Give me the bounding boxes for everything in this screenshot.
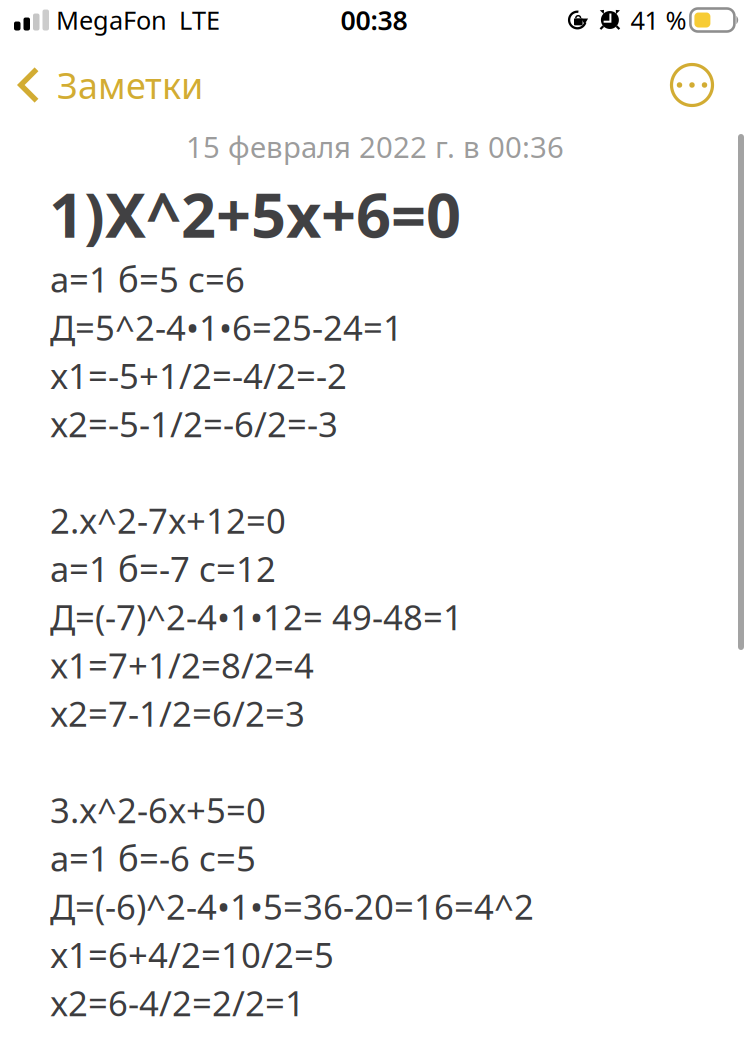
staticText: x1=-5+1/2=-4/2=-2 bbox=[50, 353, 347, 399]
button[interactable]: Note body bbox=[0, 113, 750, 1027]
button[interactable]: More options bbox=[670, 57, 750, 113]
staticText: 00:38 bbox=[340, 2, 407, 38]
staticText: а=1 б=5 с=6 bbox=[50, 256, 245, 302]
staticText: Д=(-6)^2-4•1•5=36-20=16=4^2 bbox=[50, 883, 534, 929]
button[interactable]: Заметки bbox=[0, 57, 219, 113]
staticText: x2=-5-1/2=-6/2=-3 bbox=[50, 401, 338, 447]
staticText: x1=6+4/2=10/2=5 bbox=[50, 932, 334, 978]
staticText: Д=(-7)^2-4•1•12= 49-48=1 bbox=[50, 594, 463, 640]
staticText: а=1 б=-7 с=12 bbox=[50, 546, 276, 592]
staticText: Д=5^2-4•1•6=25-24=1 bbox=[50, 304, 403, 350]
staticText: x1=7+1/2=8/2=4 bbox=[50, 642, 314, 688]
staticText: Заметки bbox=[57, 61, 203, 109]
staticText: x2=6-4/2=2/2=1 bbox=[50, 980, 305, 1026]
staticText: x2=7-1/2=6/2=3 bbox=[50, 690, 305, 736]
staticText: 41 % bbox=[630, 3, 686, 37]
staticText: 3.x^2-6x+5=0 bbox=[50, 787, 266, 833]
staticText: а=1 б=-6 с=5 bbox=[50, 835, 256, 881]
staticText: 15 февраля 2022 г. в 00:36 bbox=[186, 127, 564, 166]
staticText: LTE bbox=[179, 3, 220, 37]
staticText: 2.x^2-7x+12=0 bbox=[50, 497, 286, 543]
staticText: MegaFon bbox=[56, 3, 167, 37]
staticText: 1)X^2+5x+6=0 bbox=[49, 173, 461, 255]
